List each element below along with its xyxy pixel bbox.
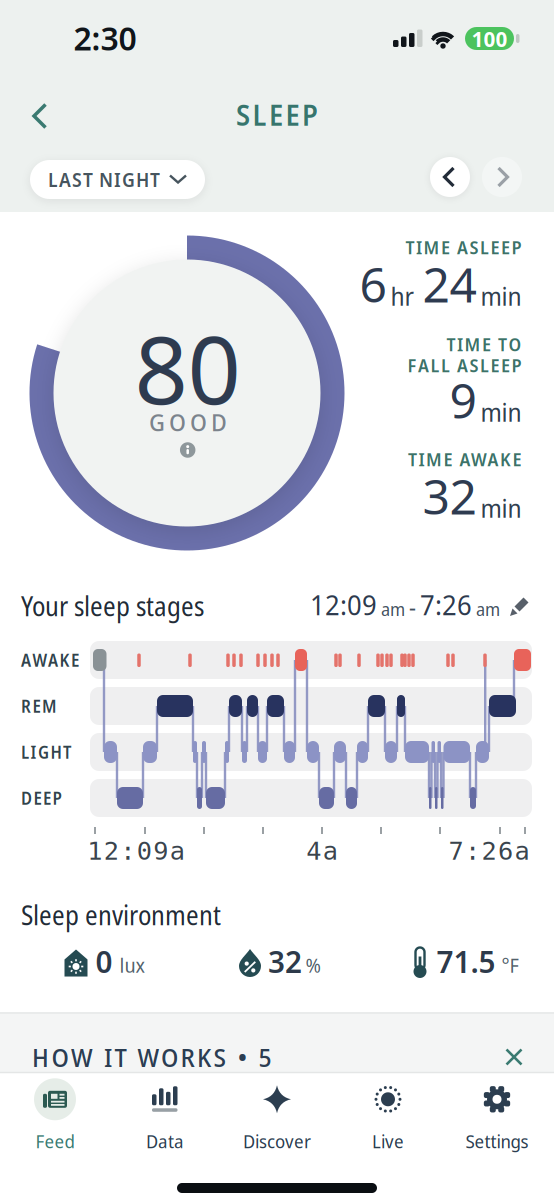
staticText: Your sleep stages [21, 588, 204, 624]
staticText: Discover [243, 1128, 311, 1154]
button[interactable]: Settings [465, 1078, 528, 1154]
staticText: 6 [359, 251, 386, 317]
button[interactable]: Previous night [430, 157, 470, 197]
staticText: GOOD [149, 406, 227, 438]
staticText: 12:09a [87, 837, 185, 865]
staticText: 32 [422, 463, 476, 529]
button[interactable]: Live [366, 1078, 410, 1154]
staticText: Feed [35, 1128, 74, 1154]
staticText: min [480, 491, 521, 525]
staticText: TIME TO [446, 331, 521, 357]
staticText: LIGHT [21, 740, 71, 764]
staticText: Settings [465, 1128, 528, 1154]
staticText: 9 [449, 367, 476, 433]
staticText: am [476, 597, 500, 621]
staticText: Live [372, 1128, 404, 1154]
staticText: Sleep environment [21, 897, 221, 933]
staticText: LAST NIGHT [48, 166, 160, 193]
staticText: 7:26a [448, 837, 529, 865]
button[interactable]: Back [32, 102, 48, 129]
staticText: DEEP [21, 786, 61, 810]
staticText: °F [501, 951, 518, 979]
staticText: AWAKE [21, 648, 79, 672]
staticText: min [480, 395, 521, 429]
staticText: TIME ASLEEP [405, 234, 521, 260]
staticText: - [409, 591, 416, 622]
staticText: 24 [422, 251, 476, 317]
staticText: SLEEP [236, 96, 318, 134]
staticText: 100 [471, 23, 507, 53]
staticText: 0 [95, 940, 112, 982]
staticText: 80 [134, 304, 240, 431]
button[interactable]: Close [506, 1049, 521, 1064]
staticText: HOW IT WORKS • 5 [32, 1039, 271, 1075]
button[interactable]: LAST NIGHT [30, 160, 205, 199]
staticText: TIME AWAKE [408, 446, 521, 472]
button[interactable]: Edit sleep time [508, 593, 532, 619]
staticText: am [381, 597, 405, 621]
staticText: REM [21, 694, 57, 718]
staticText: hr [390, 279, 414, 313]
staticText: 7:26 [420, 587, 472, 623]
staticText: 32 [268, 940, 302, 982]
staticText: % [305, 951, 320, 979]
staticText: 12:09 [310, 587, 377, 623]
button[interactable]: Data [143, 1078, 187, 1154]
staticText: 71.5 [436, 940, 495, 982]
staticText: min [480, 279, 521, 313]
button[interactable]: About sleep score [180, 442, 195, 458]
staticText: Data [146, 1128, 184, 1154]
staticText: lux [119, 951, 144, 979]
button[interactable]: Discover [243, 1078, 311, 1154]
staticText: 2:30 [73, 16, 136, 60]
button[interactable]: Feed [34, 1078, 76, 1154]
button[interactable]: Next night [482, 157, 522, 197]
staticText: 4a [306, 837, 338, 865]
staticText: FALL ASLEEP [407, 352, 521, 378]
